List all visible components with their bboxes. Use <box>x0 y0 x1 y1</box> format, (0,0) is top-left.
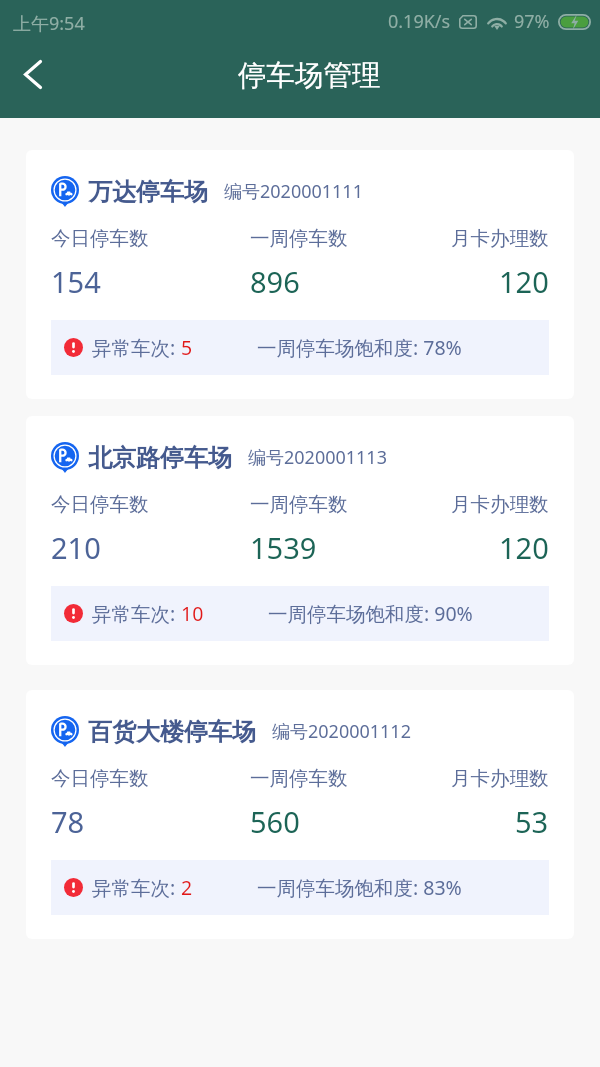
staticText: 百货大楼停车场 <box>88 717 256 747</box>
staticText: 53 <box>515 802 549 841</box>
staticText: 月卡办理数 <box>451 492 549 517</box>
staticText: 停车场管理 <box>238 58 381 94</box>
staticText: 5 <box>181 334 193 361</box>
staticText: 2 <box>181 874 193 901</box>
button[interactable]: 北京路停车场 <box>26 416 574 665</box>
staticText: 一周停车场饱和度: 83% <box>257 874 462 901</box>
staticText: 560 <box>250 802 300 841</box>
staticText: 154 <box>51 262 101 301</box>
staticText: 月卡办理数 <box>451 226 549 251</box>
staticText: 异常车次: <box>92 600 181 627</box>
staticText: 今日停车数 <box>51 766 149 791</box>
button[interactable]: Back <box>9 50 57 98</box>
staticText: 120 <box>499 262 549 301</box>
staticText: 编号2020001111 <box>224 179 363 204</box>
staticText: 78 <box>51 802 85 841</box>
staticText: 120 <box>499 528 549 567</box>
staticText: 月卡办理数 <box>451 766 549 791</box>
staticText: 编号2020001112 <box>272 719 411 744</box>
staticText: 210 <box>51 528 101 567</box>
staticText: 万达停车场 <box>88 177 208 207</box>
staticText: 97% <box>514 9 550 34</box>
staticText: 一周停车数 <box>250 492 348 517</box>
staticText: 今日停车数 <box>51 226 149 251</box>
staticText: 异常车次: <box>92 874 181 901</box>
staticText: 今日停车数 <box>51 492 149 517</box>
staticText: 一周停车数 <box>250 766 348 791</box>
staticText: 编号2020001113 <box>248 445 387 470</box>
staticText: 北京路停车场 <box>88 443 232 473</box>
staticText: 一周停车数 <box>250 226 348 251</box>
staticText: 1539 <box>250 528 317 567</box>
staticText: 一周停车场饱和度: 78% <box>257 334 462 361</box>
staticText: 上午9:54 <box>13 11 85 36</box>
staticText: 0.19K/s <box>388 9 451 34</box>
staticText: 一周停车场饱和度: 90% <box>268 600 473 627</box>
button[interactable]: 万达停车场 <box>26 150 574 399</box>
button[interactable]: 百货大楼停车场 <box>26 690 574 939</box>
staticText: 896 <box>250 262 300 301</box>
staticText: 10 <box>181 600 204 627</box>
staticText: 异常车次: <box>92 334 181 361</box>
